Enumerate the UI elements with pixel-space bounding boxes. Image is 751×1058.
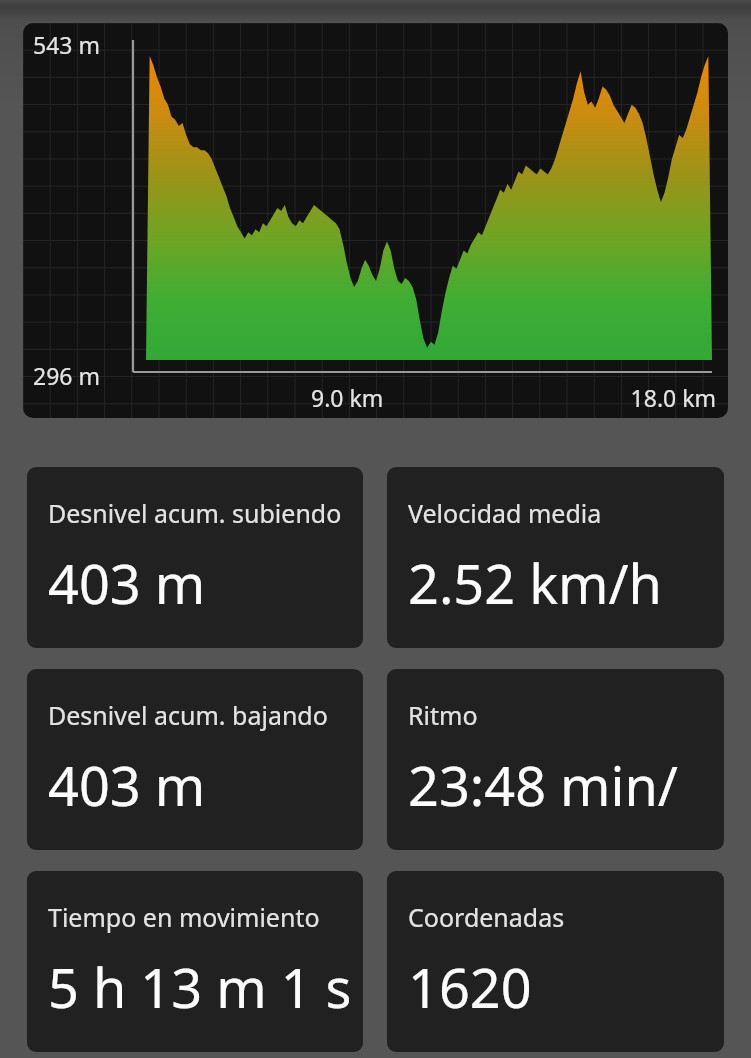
button[interactable]: Coordenadas: [387, 871, 724, 1052]
button[interactable]: Desnivel acum. subiendo: [27, 467, 363, 648]
staticText: 9.0 km: [311, 382, 384, 413]
staticText: Ritmo: [408, 698, 478, 732]
staticText: 543 m: [33, 29, 100, 60]
staticText: 296 m: [33, 360, 100, 391]
staticText: Desnivel acum. subiendo: [48, 496, 342, 530]
staticText: 23:48 min/km: [408, 748, 714, 822]
staticText: 1620: [408, 950, 532, 1024]
staticText: Tiempo en movimiento: [48, 900, 320, 934]
button[interactable]: Velocidad media: [387, 467, 724, 648]
staticText: 2.52 km/h: [408, 546, 662, 620]
button[interactable]: Tiempo en movimiento: [27, 871, 363, 1052]
staticText: 5 h 13 m 1 s: [48, 950, 352, 1024]
button[interactable]: 543 m: [23, 23, 728, 418]
staticText: 403 m: [48, 748, 206, 822]
button[interactable]: Desnivel acum. bajando: [27, 669, 363, 850]
staticText: Velocidad media: [408, 496, 602, 530]
staticText: 18.0 km: [630, 382, 716, 413]
staticText: 403 m: [48, 546, 206, 620]
staticText: Desnivel acum. bajando: [48, 698, 328, 732]
button[interactable]: Ritmo: [387, 669, 724, 850]
staticText: Coordenadas: [408, 900, 565, 934]
